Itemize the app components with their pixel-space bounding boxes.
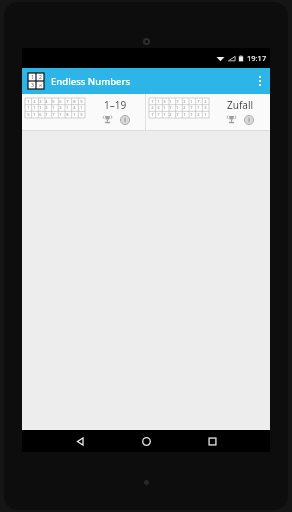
staticText: 1 bbox=[204, 112, 207, 117]
staticText: 3 bbox=[163, 99, 166, 104]
staticText: 7 bbox=[157, 112, 160, 117]
staticText: 8 bbox=[73, 99, 76, 104]
staticText: Zufall bbox=[227, 98, 254, 112]
button[interactable]: Info bbox=[243, 114, 254, 125]
staticText: 7 bbox=[176, 99, 179, 104]
staticText: 1–19 bbox=[104, 98, 127, 112]
staticText: 1 bbox=[45, 112, 48, 117]
staticText: 7 bbox=[190, 105, 193, 110]
button[interactable]: App icon bbox=[28, 73, 44, 89]
staticText: 7 bbox=[176, 112, 179, 117]
staticText: 5 bbox=[27, 112, 30, 117]
button[interactable]: 7 bbox=[146, 94, 270, 130]
staticText: Endless Numbers bbox=[51, 75, 131, 88]
staticText: 7 bbox=[190, 112, 193, 117]
staticText: 7 bbox=[197, 99, 200, 104]
staticText: 1 bbox=[33, 112, 36, 117]
staticText: 3 bbox=[204, 105, 207, 110]
staticText: 5 bbox=[52, 99, 55, 104]
staticText: 1 bbox=[80, 105, 83, 110]
button[interactable]: Recent apps bbox=[199, 430, 225, 452]
staticText: 1 bbox=[66, 105, 69, 110]
staticText: 9 bbox=[80, 99, 83, 104]
staticText: 1 bbox=[190, 99, 193, 104]
staticText: 2 bbox=[151, 105, 154, 110]
button[interactable]: Highscore bbox=[226, 114, 237, 125]
staticText: 1 bbox=[52, 105, 55, 110]
staticText: 1 bbox=[176, 105, 179, 110]
staticText: 2 bbox=[39, 74, 42, 81]
button[interactable]: Back bbox=[67, 430, 93, 452]
staticText: 9 bbox=[80, 112, 83, 117]
staticText: 1 bbox=[163, 105, 166, 110]
staticText: 1 bbox=[197, 105, 200, 110]
staticText: 2 bbox=[45, 105, 48, 110]
staticText: 7 bbox=[66, 99, 69, 104]
staticText: 1 bbox=[39, 105, 42, 110]
staticText: 7 bbox=[151, 112, 154, 117]
staticText: 7 bbox=[52, 112, 55, 117]
staticText: 2 bbox=[169, 112, 172, 117]
staticText: 1 bbox=[33, 105, 36, 110]
button[interactable]: 1 bbox=[22, 94, 145, 130]
staticText: 4 bbox=[45, 99, 48, 104]
staticText: 8 bbox=[66, 112, 69, 117]
button[interactable]: Info bbox=[119, 114, 130, 125]
staticText: 1 bbox=[169, 99, 172, 104]
staticText: 1 bbox=[31, 74, 34, 81]
staticText: 2 bbox=[197, 112, 200, 117]
button[interactable]: Home bbox=[133, 430, 159, 452]
staticText: 3 bbox=[31, 82, 34, 89]
staticText: 2 bbox=[183, 99, 186, 104]
staticText: 6 bbox=[59, 99, 62, 104]
staticText: 19:17 bbox=[247, 53, 267, 63]
staticText: 1 bbox=[59, 112, 62, 117]
staticText: 3 bbox=[39, 99, 42, 104]
staticText: ∞ bbox=[38, 82, 43, 88]
button[interactable]: More options bbox=[250, 68, 270, 94]
staticText: 2 bbox=[204, 99, 207, 104]
staticText: 1 bbox=[157, 99, 160, 104]
staticText: 7 bbox=[151, 99, 154, 104]
staticText: 4 bbox=[73, 105, 76, 110]
staticText: 3 bbox=[59, 105, 62, 110]
staticText: 1 bbox=[27, 99, 30, 104]
staticText: 1 bbox=[27, 105, 30, 110]
staticText: 1 bbox=[163, 112, 166, 117]
staticText: 1 bbox=[73, 112, 76, 117]
staticText: 3 bbox=[157, 105, 160, 110]
staticText: 2 bbox=[33, 99, 36, 104]
button[interactable]: Highscore bbox=[102, 114, 113, 125]
staticText: 1 bbox=[183, 112, 186, 117]
staticText: 7 bbox=[169, 105, 172, 110]
staticText: 6 bbox=[39, 112, 42, 117]
staticText: 2 bbox=[183, 105, 186, 110]
